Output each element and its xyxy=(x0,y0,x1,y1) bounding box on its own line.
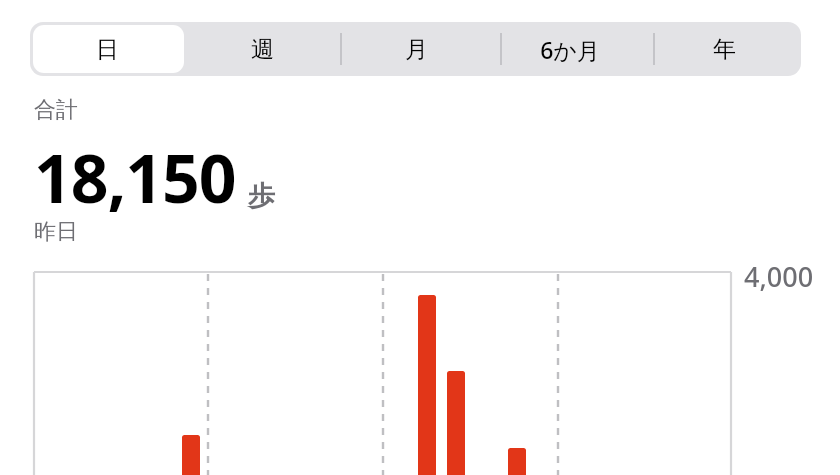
staticText: 合計 xyxy=(34,96,78,124)
staticText: 昨日 xyxy=(34,218,78,246)
staticText: 週 xyxy=(251,35,274,64)
button[interactable]: 日 xyxy=(30,22,185,76)
button[interactable]: 月 xyxy=(339,22,493,76)
staticText: 歩 xyxy=(248,179,275,213)
staticText: 6か月 xyxy=(540,34,600,65)
staticText: 年 xyxy=(713,35,736,64)
button[interactable]: 週 xyxy=(185,22,339,76)
staticText: 月 xyxy=(405,35,428,64)
staticText: 4,000 xyxy=(744,258,814,295)
button[interactable]: 6か月 xyxy=(493,22,647,76)
staticText: 18,150 xyxy=(34,132,236,222)
button[interactable]: 年 xyxy=(647,22,801,76)
staticText: 日 xyxy=(96,35,119,64)
